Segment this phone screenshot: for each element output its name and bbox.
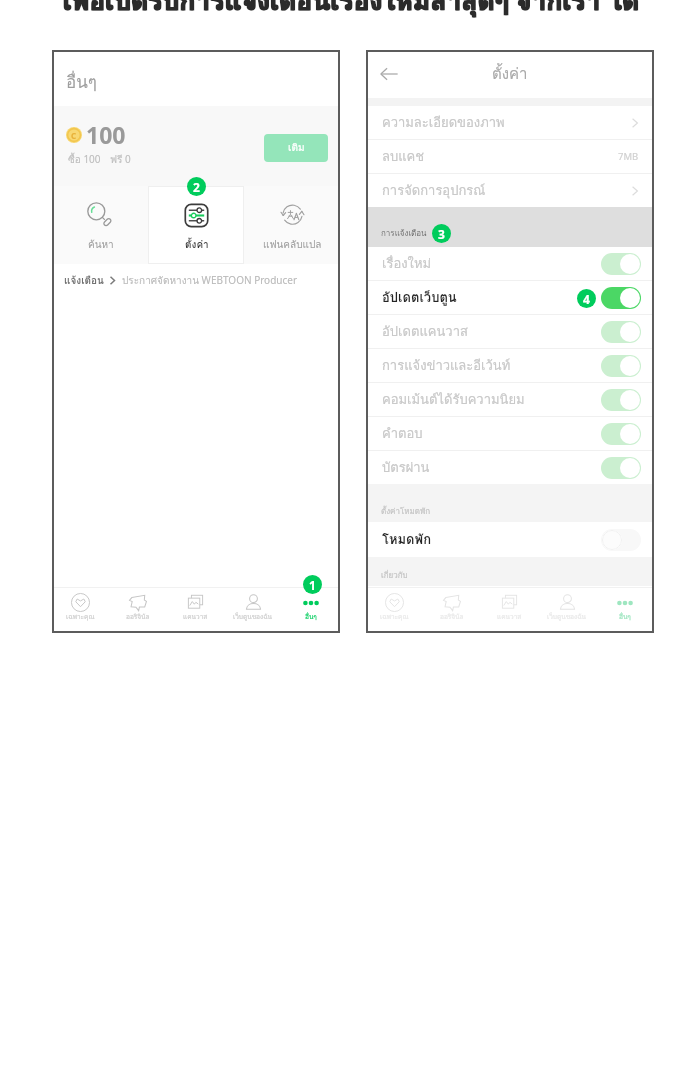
staticText: อัปเดตเว็บตูน xyxy=(382,287,457,308)
staticText: ประกาศจัดหางาน WEBTOON Producer xyxy=(122,273,298,289)
staticText: แฟนคลับแปล xyxy=(263,237,322,253)
button[interactable]: แคนวาส xyxy=(166,587,224,633)
button[interactable]: โหมดพัก xyxy=(366,522,654,557)
staticText: การแจ้งข่าวและอีเว้นท์ xyxy=(382,355,511,376)
staticText: ตั้งค่า xyxy=(492,62,528,86)
staticText: คำตอบ xyxy=(382,423,423,444)
button[interactable]: เฉพาะคุณ xyxy=(366,587,423,633)
button[interactable]: คำตอบ xyxy=(366,417,654,450)
button[interactable]: บัตรผ่าน xyxy=(601,457,641,479)
button[interactable]: เติม xyxy=(264,134,328,162)
button[interactable]: เว็บตูนของฉัน xyxy=(224,587,282,633)
button[interactable]: Back xyxy=(377,62,401,86)
staticText: เพื่อเปิดรับการแจ้งเตือนเรื่องใหม่ล่าสุด… xyxy=(62,0,639,22)
button[interactable]: ตั้งค่า xyxy=(148,186,244,264)
button[interactable]: แคนวาส xyxy=(480,587,538,633)
button[interactable]: ออริจินัล xyxy=(109,587,166,633)
button[interactable]: อัปเดตแคนวาส xyxy=(601,321,641,343)
button[interactable]: การแจ้งข่าวและอีเว้นท์ xyxy=(601,355,641,377)
staticText: บัตรผ่าน xyxy=(382,457,430,478)
button[interactable]: เฉพาะคุณ xyxy=(52,587,109,633)
staticText: เติม xyxy=(288,140,305,156)
staticText: คอมเม้นต์ได้รับความนิยม xyxy=(382,389,525,410)
button[interactable]: การแจ้งข่าวและอีเว้นท์ xyxy=(366,349,654,382)
staticText: อื่นๆ xyxy=(66,68,97,95)
staticText: ลบแคช xyxy=(382,146,425,167)
staticText: แคนวาส xyxy=(497,612,522,622)
button[interactable]: อัปเดตเว็บตูน xyxy=(366,281,654,314)
button[interactable]: ลบแคช xyxy=(366,140,654,173)
staticText: ความละเอียดของภาพ xyxy=(382,112,505,133)
staticText: การจัดการอุปกรณ์ xyxy=(382,180,486,201)
staticText: อื่นๆ xyxy=(305,612,317,622)
button[interactable]: การจัดการอุปกรณ์ xyxy=(366,174,654,207)
button[interactable]: แจ้งเตือน xyxy=(52,264,340,297)
staticText: 7MB xyxy=(618,150,639,163)
staticText: ตั้งค่า xyxy=(185,237,209,253)
button[interactable]: เว็บตูนของฉัน xyxy=(538,587,596,633)
button[interactable]: บัตรผ่าน xyxy=(366,451,654,484)
staticText: 1 xyxy=(309,577,316,593)
button[interactable]: อัปเดตแคนวาส xyxy=(366,315,654,348)
staticText: 3 xyxy=(438,226,445,242)
staticText: 4 xyxy=(583,291,590,307)
staticText: เว็บตูนของฉัน xyxy=(547,612,587,622)
button[interactable]: เรื่องใหม่ xyxy=(366,247,654,280)
staticText: 100 xyxy=(86,119,126,150)
button[interactable]: เรื่องใหม่ xyxy=(601,253,641,275)
staticText: ฟรี 0 xyxy=(110,152,131,168)
button[interactable]: อัปเดตเว็บตูน xyxy=(601,287,641,309)
staticText: เรื่องใหม่ xyxy=(382,253,432,274)
staticText: แคนวาส xyxy=(183,612,208,622)
staticText: 2 xyxy=(193,179,200,195)
staticText: ออริจินัล xyxy=(440,612,464,622)
button[interactable]: คอมเม้นต์ได้รับความนิยม xyxy=(601,389,641,411)
staticText: เฉพาะคุณ xyxy=(380,612,409,622)
button[interactable]: ออริจินัล xyxy=(423,587,480,633)
button[interactable]: อื่นๆ xyxy=(282,587,340,633)
button[interactable]: คอมเม้นต์ได้รับความนิยม xyxy=(366,383,654,416)
button[interactable]: อื่นๆ xyxy=(596,587,654,633)
staticText: ออริจินัล xyxy=(126,612,150,622)
staticText: อื่นๆ xyxy=(619,612,631,622)
staticText: ค้นหา xyxy=(88,237,114,253)
staticText: อัปเดตแคนวาส xyxy=(382,321,468,342)
staticText: แจ้งเตือน xyxy=(64,273,104,289)
staticText: การแจ้งเตือน xyxy=(381,227,427,240)
staticText: เพื่อเปิดรับการแจ้งเตือนเรื่องใหม่ล่าสุด… xyxy=(63,0,640,22)
button[interactable]: ค้นหา xyxy=(52,186,148,264)
staticText: โหมดพัก xyxy=(382,529,432,550)
button[interactable]: ความละเอียดของภาพ xyxy=(366,106,654,139)
staticText: เว็บตูนของฉัน xyxy=(233,612,273,622)
staticText: C xyxy=(71,130,77,141)
staticText: เฉพาะคุณ xyxy=(66,612,95,622)
staticText: เกี่ยวกับ xyxy=(381,569,408,582)
staticText: ซื้อ 100 xyxy=(68,152,101,168)
button[interactable]: คำตอบ xyxy=(601,423,641,445)
staticText: ตั้งค่าโหมดพัก xyxy=(381,505,431,518)
button[interactable]: แฟนคลับแปล xyxy=(244,186,340,264)
